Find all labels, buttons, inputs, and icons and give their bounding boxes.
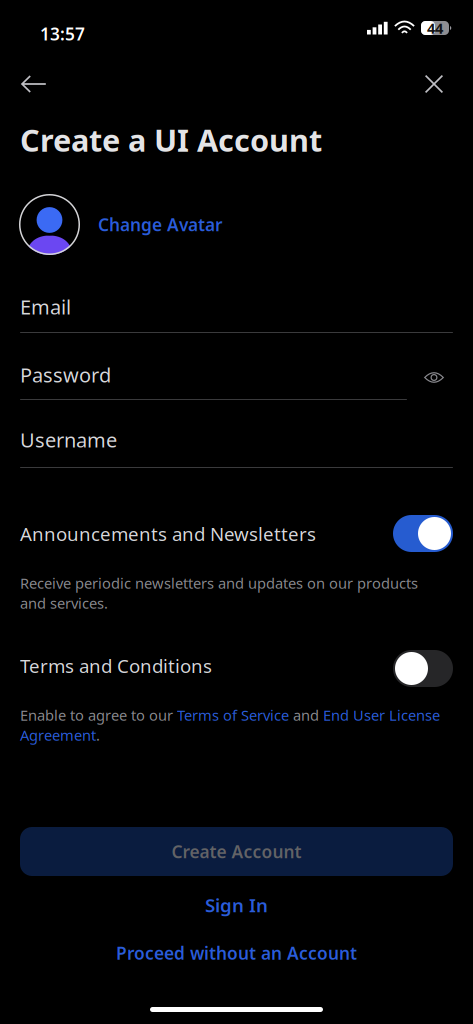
button[interactable]: Close: [412, 65, 456, 103]
staticText: Receive periodic newsletters and updates…: [20, 573, 418, 593]
staticText: Sign In: [205, 892, 268, 918]
button[interactable]: Create Account: [20, 827, 453, 876]
staticText: Terms and Conditions: [20, 653, 212, 678]
staticText: End User License: [323, 705, 440, 725]
staticText: and: [289, 705, 323, 725]
staticText: Terms of Service: [177, 705, 289, 725]
staticText: and services.: [20, 593, 108, 613]
button[interactable]: Terms of Service: [177, 705, 289, 725]
staticText: Announcements and Newsletters: [20, 521, 316, 546]
staticText: Change Avatar: [98, 213, 223, 236]
staticText: Enable to agree to our: [20, 705, 177, 725]
button[interactable]: End User License: [323, 705, 440, 725]
staticText: Password: [20, 361, 111, 388]
staticText: Email: [20, 293, 71, 320]
button[interactable]: Back: [12, 64, 56, 104]
button[interactable]: Terms and Conditions: [393, 650, 453, 687]
button[interactable]: Show password: [424, 370, 444, 385]
button[interactable]: Change Avatar: [19, 194, 309, 255]
button[interactable]: Proceed without an Account: [0, 938, 473, 968]
staticText: 13:57: [40, 22, 85, 46]
staticText: .: [96, 725, 100, 745]
button[interactable]: Announcements and Newsletters: [393, 515, 453, 552]
button[interactable]: Sign In: [0, 890, 473, 920]
button[interactable]: Agreement: [20, 725, 96, 745]
staticText: Create Account: [171, 840, 301, 863]
staticText: Proceed without an Account: [116, 941, 357, 965]
staticText: Username: [20, 426, 117, 453]
staticText: Agreement: [20, 725, 96, 745]
staticText: Create a UI Account: [20, 119, 322, 161]
staticText: 44: [427, 18, 443, 38]
